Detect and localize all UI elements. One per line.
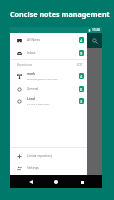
staticText: Concise notes management xyxy=(10,9,110,19)
button[interactable]: Create repository xyxy=(10,149,87,162)
staticText: Settings xyxy=(27,166,39,170)
staticText: EDIT xyxy=(77,63,83,67)
staticText: mark xyxy=(27,72,36,76)
staticText: Local xyxy=(27,97,36,101)
staticText: Inbox xyxy=(27,51,36,55)
staticText: 3 xyxy=(80,99,83,104)
staticText: Repositories xyxy=(17,63,33,67)
button[interactable]: Local xyxy=(10,94,87,107)
staticText: 8 xyxy=(80,87,83,92)
staticText: 2.3 and 9 files/notes xyxy=(27,102,50,105)
staticText: 10:30 xyxy=(92,28,101,32)
button[interactable]: mark xyxy=(10,69,87,82)
button[interactable]: General xyxy=(10,82,87,95)
button[interactable]: Settings xyxy=(10,161,87,174)
button[interactable]: Recents xyxy=(77,177,87,187)
staticText: All Notes xyxy=(27,38,40,42)
staticText: 4 xyxy=(80,74,83,79)
staticText: General xyxy=(27,87,39,91)
button[interactable]: Back xyxy=(26,177,36,187)
button[interactable]: Home xyxy=(51,177,61,187)
button[interactable]: All Notes xyxy=(10,33,87,46)
staticText: 4 xyxy=(80,38,83,43)
button[interactable]: Search xyxy=(89,35,100,46)
button[interactable]: Inbox xyxy=(10,46,87,59)
staticText: Create repository xyxy=(27,154,53,158)
staticText: grettings@gmail.com/mark xyxy=(27,77,58,80)
staticText: 9 xyxy=(80,51,83,56)
